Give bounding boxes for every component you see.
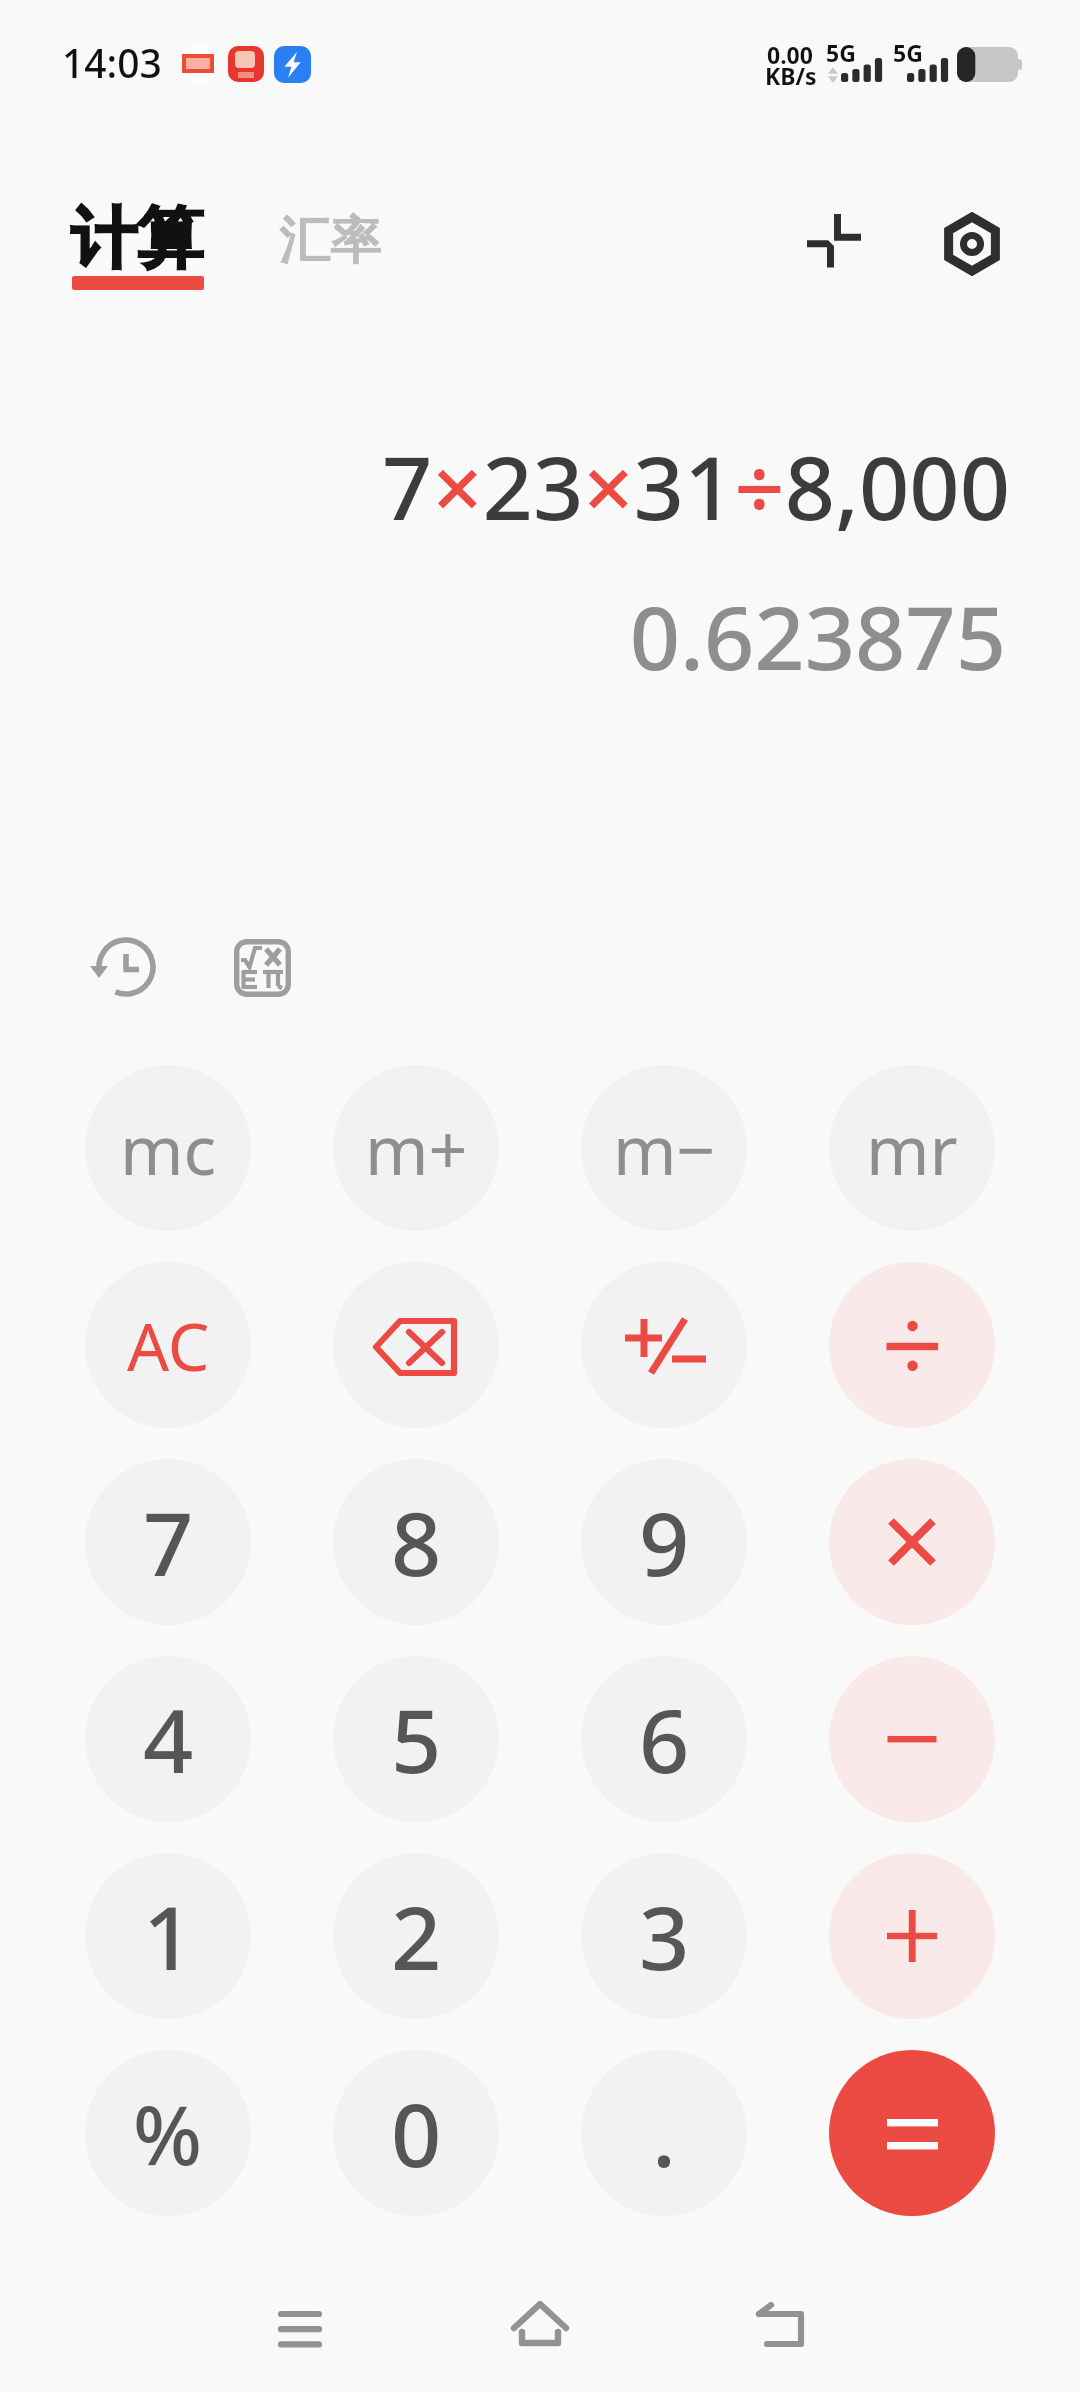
staticText: AC — [127, 1300, 210, 1390]
staticText: m− — [613, 1102, 716, 1195]
staticText: 8 — [391, 1482, 442, 1602]
button[interactable]: % — [85, 2050, 251, 2216]
button[interactable]: Minus — [829, 1656, 995, 1822]
button[interactable]: 8 — [333, 1459, 499, 1625]
staticText: 5 — [391, 1679, 442, 1799]
button[interactable]: 0 — [333, 2050, 499, 2216]
button[interactable]: AC — [85, 1262, 251, 1428]
button[interactable]: History — [82, 923, 170, 1011]
staticText: 7×23×31÷8,000 — [0, 426, 1010, 546]
staticText: 4 — [143, 1679, 194, 1799]
button[interactable]: 1 — [85, 1853, 251, 2019]
staticText: 7 — [143, 1482, 194, 1602]
staticText: KB/s — [765, 60, 817, 91]
staticText: % — [133, 2078, 203, 2188]
button[interactable]: Recents — [250, 2282, 350, 2378]
button[interactable]: 汇率 — [257, 180, 405, 284]
staticText: 5G — [893, 37, 923, 68]
button[interactable]: m− — [581, 1065, 747, 1231]
button[interactable]: 5 — [333, 1656, 499, 1822]
button[interactable]: Settings — [920, 192, 1024, 296]
staticText: m+ — [365, 1102, 468, 1195]
staticText: 9 — [639, 1482, 690, 1602]
button[interactable]: 9 — [581, 1459, 747, 1625]
staticText: 14:03 — [62, 36, 162, 89]
button[interactable]: 7 — [85, 1459, 251, 1625]
button[interactable]: Divide — [829, 1262, 995, 1428]
staticText: 3 — [639, 1876, 690, 1996]
button[interactable]: Plus — [829, 1853, 995, 2019]
button[interactable]: Equals — [829, 2050, 995, 2216]
button[interactable]: Back — [730, 2282, 830, 2378]
button[interactable]: Multiply — [829, 1459, 995, 1625]
button[interactable]: 3 — [581, 1853, 747, 2019]
staticText: . — [652, 2073, 676, 2193]
button[interactable]: 4 — [85, 1656, 251, 1822]
button[interactable]: m+ — [333, 1065, 499, 1231]
staticText: mc — [120, 1102, 217, 1195]
staticText: 0.623875 — [0, 576, 1006, 696]
button[interactable]: Collapse — [780, 200, 890, 280]
button[interactable]: Home — [490, 2282, 590, 2378]
staticText: 1 — [143, 1876, 194, 1996]
staticText: 2 — [391, 1876, 442, 1996]
button[interactable]: 计算 — [50, 180, 226, 296]
staticText: 0.00 — [767, 39, 813, 70]
button[interactable]: Backspace — [333, 1262, 499, 1428]
button[interactable]: 6 — [581, 1656, 747, 1822]
button[interactable]: mr — [829, 1065, 995, 1231]
staticText: 0 — [391, 2073, 442, 2193]
button[interactable]: 2 — [333, 1853, 499, 2019]
button[interactable]: Plus minus — [581, 1262, 747, 1428]
staticText: 5G — [826, 37, 856, 68]
staticText: 6 — [639, 1679, 690, 1799]
staticText: mr — [866, 1102, 958, 1195]
staticText: 汇率 — [279, 209, 381, 273]
button[interactable]: Scientific — [217, 922, 305, 1010]
button[interactable]: mc — [85, 1065, 251, 1231]
staticText: 计算 — [71, 197, 203, 280]
button[interactable]: . — [581, 2050, 747, 2216]
